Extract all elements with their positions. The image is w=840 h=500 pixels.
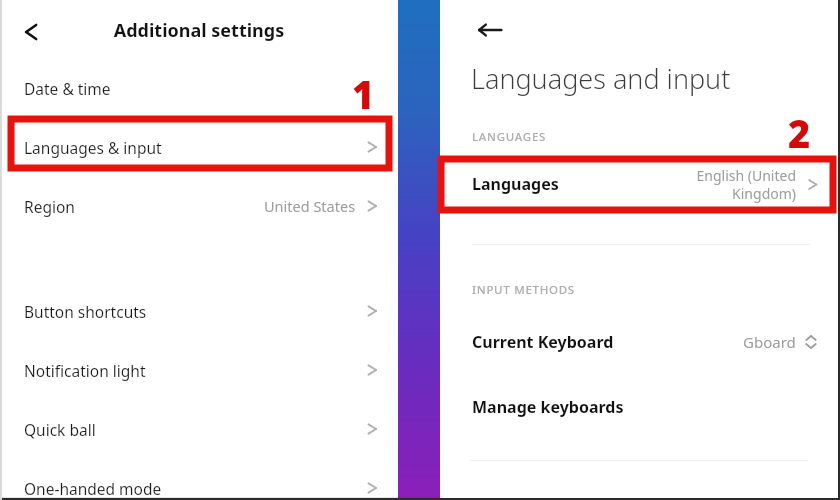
button[interactable]: Languages [440, 160, 838, 208]
button[interactable]: Current Keyboard [440, 320, 838, 364]
button[interactable]: Back [472, 12, 508, 48]
staticText: 1 [352, 68, 375, 120]
staticText: English (United Kingdom) [696, 166, 796, 203]
staticText: 2 [788, 107, 811, 159]
staticText: Quick ball [24, 419, 96, 440]
staticText: Languages [472, 173, 559, 195]
staticText: Manage keyboards [472, 396, 624, 418]
staticText: One-handed mode [24, 478, 162, 499]
button[interactable]: Languages & input [0, 125, 398, 169]
staticText: INPUT METHODS [472, 282, 575, 298]
button[interactable]: Button shortcuts [0, 289, 398, 333]
button[interactable]: Region [0, 184, 398, 228]
staticText: Button shortcuts [24, 301, 147, 322]
staticText: Date & time [24, 78, 111, 99]
staticText: Region [24, 196, 75, 217]
staticText: Current Keyboard [472, 331, 614, 353]
staticText: United States [264, 196, 356, 216]
button[interactable]: One-handed mode [0, 466, 398, 500]
staticText: Languages and input [471, 60, 731, 97]
button[interactable]: Back [16, 16, 48, 48]
staticText: LANGUAGES [472, 129, 547, 145]
button[interactable]: Date & time [0, 66, 398, 110]
staticText: Languages & input [24, 137, 162, 158]
staticText: Additional settings [0, 18, 398, 43]
button[interactable]: Quick ball [0, 407, 398, 451]
button[interactable]: Manage keyboards [440, 385, 838, 429]
staticText: Gboard [743, 332, 796, 352]
staticText: Notification light [24, 360, 146, 381]
button[interactable]: Notification light [0, 348, 398, 392]
